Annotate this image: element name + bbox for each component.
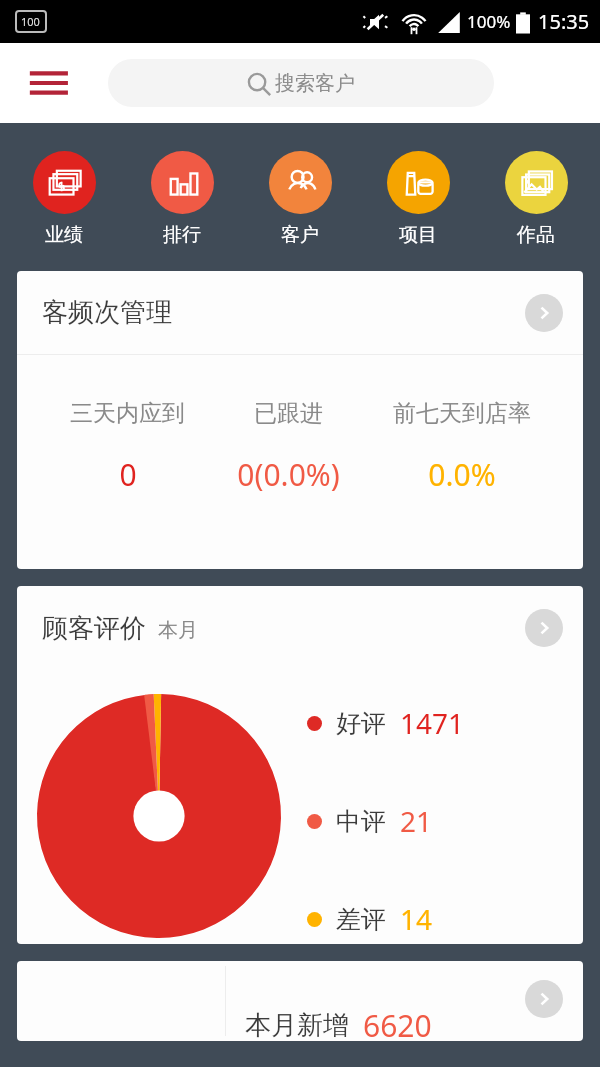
button[interactable]: 中评 (307, 802, 433, 840)
button[interactable]: Menu (22, 59, 78, 107)
button[interactable]: 好评 (307, 704, 465, 742)
button[interactable]: 作品 (488, 149, 584, 249)
staticText: 好评 (336, 708, 386, 739)
button[interactable]: 客频次管理 (17, 271, 583, 569)
staticText: 差评 (336, 904, 386, 935)
staticText: 排行 (163, 223, 201, 247)
staticText: 100 (21, 14, 40, 29)
staticText: 搜索客户 (275, 71, 355, 96)
staticText: 顾客评价 (42, 612, 146, 645)
staticText: 0.0% (428, 454, 496, 495)
staticText: 作品 (517, 223, 555, 247)
staticText: 本月 (158, 618, 198, 643)
staticText: 15:35 (538, 8, 590, 35)
staticText: 1471 (400, 704, 465, 742)
button[interactable]: 业绩 (16, 149, 112, 249)
button[interactable]: More (525, 609, 563, 647)
button[interactable]: 客户 (252, 149, 348, 249)
button[interactable]: 搜索客户 (108, 59, 494, 107)
staticText: 项目 (399, 223, 437, 247)
button[interactable]: 排行 (134, 149, 230, 249)
staticText: 21 (400, 802, 433, 840)
staticText: 本月新增 (245, 1009, 349, 1041)
button[interactable]: 项目 (370, 149, 466, 249)
staticText: 0(0.0%) (237, 454, 340, 495)
staticText: 前七天到店率 (393, 399, 531, 428)
button[interactable]: 顾客评价 (17, 586, 583, 944)
staticText: 已跟进 (254, 399, 323, 428)
staticText: 0 (119, 454, 137, 495)
button[interactable]: 差评 (307, 900, 433, 938)
staticText: 中评 (336, 806, 386, 837)
button[interactable]: 本月新增 (17, 961, 583, 1041)
staticText: 6620 (363, 1005, 432, 1041)
button[interactable]: More (525, 980, 563, 1018)
button[interactable]: More (525, 294, 563, 332)
staticText: 14 (400, 900, 433, 938)
staticText: 客户 (281, 223, 319, 247)
staticText: 客频次管理 (42, 296, 172, 329)
staticText: 业绩 (45, 223, 83, 247)
staticText: 三天内应到 (70, 399, 185, 428)
staticText: 100% (467, 10, 511, 33)
